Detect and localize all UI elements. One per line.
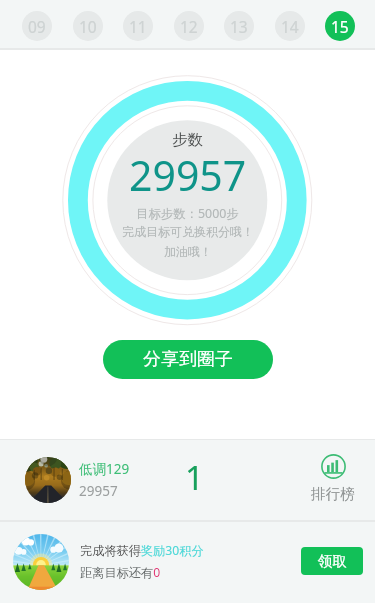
button[interactable]: 排行榜: [308, 454, 358, 503]
staticText: 12: [180, 16, 198, 37]
staticText: 距离目标还有0: [80, 564, 161, 581]
staticText: 排行榜: [311, 485, 355, 503]
staticText: 11: [129, 16, 147, 37]
staticText: 步数: [172, 130, 203, 150]
staticText: 完成目标可兑换积分哦！: [122, 224, 254, 239]
button[interactable]: 09: [22, 11, 52, 41]
staticText: 09: [28, 16, 46, 37]
staticText: 目标步数：5000步: [136, 205, 239, 222]
staticText: 加油哦！: [164, 244, 212, 259]
staticText: 1: [185, 455, 204, 500]
staticText: 10: [79, 16, 97, 37]
button[interactable]: 10: [73, 11, 103, 41]
button[interactable]: 15: [325, 11, 355, 41]
staticText: 低调129: [79, 460, 130, 478]
button[interactable]: 14: [275, 11, 305, 41]
button[interactable]: 12: [174, 11, 204, 41]
staticText: 完成将获得奖励30积分: [80, 542, 204, 559]
button[interactable]: 领取: [301, 547, 363, 575]
staticText: 14: [281, 16, 299, 37]
staticText: 领取: [318, 552, 347, 570]
staticText: 分享到圈子: [143, 348, 233, 371]
button[interactable]: 11: [123, 11, 153, 41]
button[interactable]: 完成将获得奖励30积分: [0, 522, 375, 603]
button[interactable]: 13: [224, 11, 254, 41]
button[interactable]: 低调129: [0, 440, 375, 520]
staticText: 13: [230, 16, 248, 37]
button[interactable]: 分享到圈子: [103, 340, 273, 379]
staticText: 29957: [79, 482, 118, 500]
staticText: 15: [331, 16, 349, 37]
staticText: 29957: [129, 147, 247, 203]
